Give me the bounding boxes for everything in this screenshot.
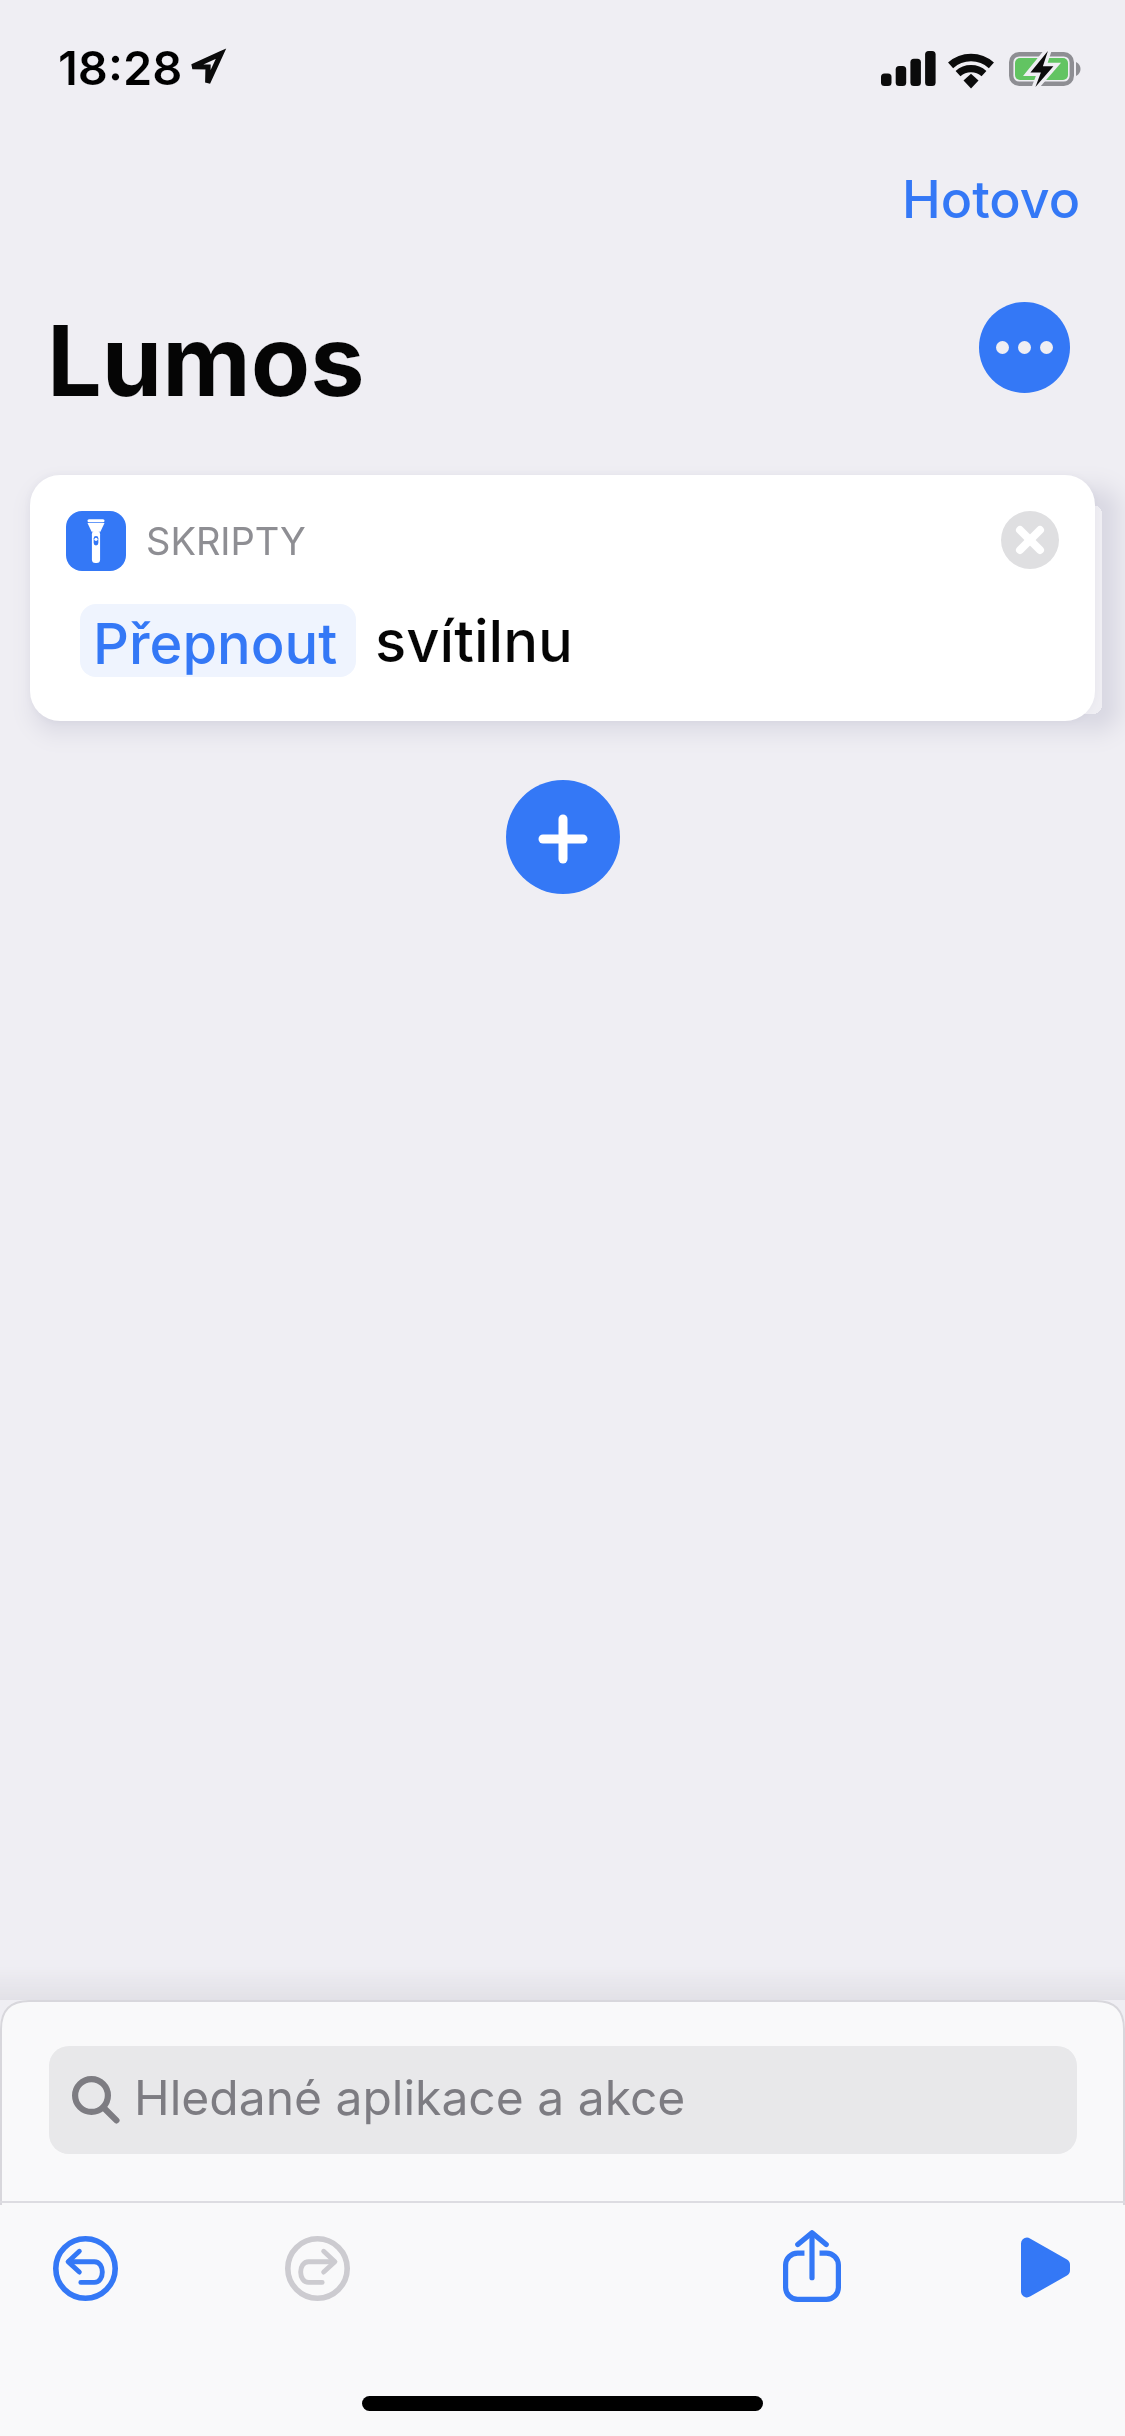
staticText: svítilnu [375,606,573,676]
staticText: Lumos [47,302,365,419]
staticText: Hledané aplikace a akce [134,2068,686,2126]
button[interactable]: Remove action [1001,511,1059,569]
staticText: 18:28 [58,39,183,96]
button[interactable]: Hotovo [872,140,1094,248]
button[interactable]: Share [783,2230,841,2302]
button[interactable]: Add action [506,780,620,894]
button[interactable]: More options [979,302,1070,393]
button[interactable]: Run [1021,2240,1070,2295]
staticText: SKRIPTY [146,518,306,564]
button[interactable]: Undo [53,2236,118,2301]
button[interactable] [80,604,356,677]
button[interactable]: SKRIPTY [30,475,1095,721]
staticText: Hotovo [902,168,1081,231]
button[interactable]: Hledané aplikace a akce [49,2046,1077,2154]
staticText: Přepnout [93,610,338,678]
button[interactable]: Redo [285,2236,350,2301]
